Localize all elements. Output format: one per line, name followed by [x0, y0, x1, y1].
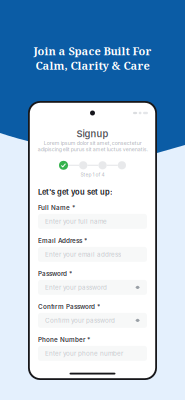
staticText: Let's get you set up: — [38, 188, 112, 197]
staticText: Calm, Clarity & Care — [35, 58, 149, 73]
staticText: Enter your email address — [45, 251, 121, 258]
staticText: Step 1 of 4 — [80, 172, 104, 178]
staticText: Email Address * — [38, 237, 87, 244]
staticText: Enter your password — [45, 284, 107, 291]
staticText: Password * — [38, 270, 72, 277]
staticText: Enter your phone number — [45, 350, 123, 357]
staticText: Join a Space Built For — [33, 43, 151, 59]
staticText: Confirm Password * — [38, 303, 100, 310]
button[interactable]: Confirm your password — [38, 313, 147, 328]
button[interactable]: Enter your full name — [38, 214, 147, 229]
button[interactable]: Enter your email address — [38, 247, 147, 262]
staticText: Signup — [76, 128, 108, 139]
staticText: Full Name * — [38, 204, 75, 211]
staticText: Phone Number * — [38, 336, 90, 343]
button[interactable]: Enter your phone number — [38, 346, 147, 361]
staticText: Enter your full name — [45, 218, 107, 225]
button[interactable]: Enter your password — [38, 280, 147, 295]
staticText: Confirm your password — [45, 317, 115, 324]
staticText: Lorem ipsum dolor sit amet, consectetur … — [37, 140, 147, 153]
